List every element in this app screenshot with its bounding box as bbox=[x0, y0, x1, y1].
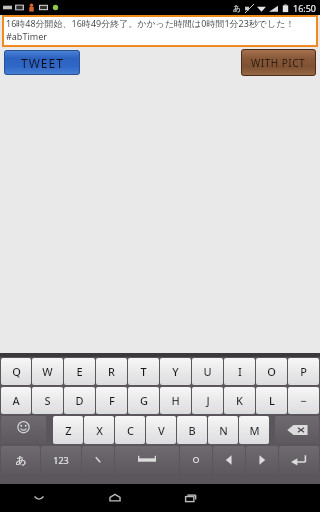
button[interactable]: E bbox=[64, 358, 95, 385]
button[interactable]: Symbols bbox=[1, 416, 46, 444]
button[interactable]: O bbox=[256, 358, 287, 385]
staticText: G bbox=[140, 393, 148, 408]
staticText: X bbox=[96, 423, 103, 438]
button[interactable]: R bbox=[96, 358, 127, 385]
staticText: 16時48分開始、16時49分終了。かかった時間は0時間1分23秒でした！ #a… bbox=[6, 17, 295, 43]
button[interactable]: F bbox=[96, 387, 127, 414]
staticText: K bbox=[236, 393, 243, 408]
staticText: P bbox=[300, 364, 307, 379]
staticText: − bbox=[300, 393, 307, 408]
staticText: R bbox=[108, 364, 115, 379]
staticText: O bbox=[267, 364, 276, 379]
button[interactable]: K bbox=[224, 387, 255, 414]
staticText: WITH PICT bbox=[251, 56, 306, 70]
staticText: B bbox=[188, 423, 196, 438]
button[interactable]: P bbox=[288, 358, 319, 385]
button[interactable]: Q bbox=[1, 358, 31, 385]
staticText: あ bbox=[233, 3, 242, 13]
staticText: TWEET bbox=[21, 55, 64, 71]
staticText: N bbox=[219, 423, 228, 438]
staticText: W bbox=[42, 364, 53, 379]
button[interactable]: Z bbox=[53, 416, 83, 444]
button[interactable]: S bbox=[32, 387, 63, 414]
button[interactable]: D bbox=[64, 387, 95, 414]
button[interactable]: Recent apps bbox=[153, 484, 229, 512]
button[interactable]: 16時48分開始、16時49分終了。かかった時間は0時間1分23秒でした！ #a… bbox=[2, 15, 318, 47]
button[interactable]: Backspace bbox=[275, 416, 319, 444]
staticText: Y bbox=[172, 364, 179, 379]
button[interactable]: Space bbox=[115, 446, 179, 474]
button[interactable]: Left bbox=[213, 446, 245, 474]
button[interactable]: Enter bbox=[279, 446, 319, 474]
button[interactable]: Punctuation bbox=[82, 446, 114, 474]
staticText: 123 bbox=[53, 454, 69, 466]
staticText: H bbox=[171, 393, 180, 408]
button[interactable]: V bbox=[146, 416, 176, 444]
staticText: A bbox=[12, 393, 20, 408]
button[interactable]: W bbox=[32, 358, 63, 385]
staticText: M bbox=[249, 423, 260, 438]
staticText: L bbox=[269, 393, 275, 408]
staticText: V bbox=[158, 423, 165, 438]
button[interactable]: あ bbox=[1, 446, 40, 474]
button[interactable]: M bbox=[239, 416, 269, 444]
button[interactable]: C bbox=[115, 416, 145, 444]
button[interactable]: X bbox=[84, 416, 114, 444]
staticText: E bbox=[76, 364, 83, 379]
button[interactable]: B bbox=[177, 416, 207, 444]
staticText: あ bbox=[15, 453, 27, 467]
button[interactable]: − bbox=[288, 387, 319, 414]
button[interactable]: H bbox=[160, 387, 191, 414]
button[interactable]: A bbox=[1, 387, 31, 414]
button[interactable]: TWEET bbox=[4, 50, 80, 75]
staticText: Q bbox=[12, 364, 21, 379]
staticText: T bbox=[140, 364, 147, 379]
button[interactable]: Y bbox=[160, 358, 191, 385]
staticText: J bbox=[206, 393, 210, 408]
staticText: S bbox=[44, 393, 51, 408]
staticText: Z bbox=[65, 423, 72, 438]
button[interactable]: L bbox=[256, 387, 287, 414]
button[interactable]: Back bbox=[0, 484, 77, 512]
staticText: D bbox=[75, 393, 84, 408]
button[interactable]: U bbox=[192, 358, 223, 385]
staticText: 16:50 bbox=[293, 2, 317, 14]
button[interactable]: Home bbox=[77, 484, 153, 512]
button[interactable]: Degree bbox=[180, 446, 212, 474]
button[interactable]: N bbox=[208, 416, 238, 444]
button[interactable]: Right bbox=[246, 446, 278, 474]
staticText: C bbox=[127, 423, 134, 438]
button[interactable]: G bbox=[128, 387, 159, 414]
staticText: F bbox=[109, 393, 115, 408]
button[interactable]: T bbox=[128, 358, 159, 385]
button[interactable]: 123 bbox=[41, 446, 81, 474]
staticText: I bbox=[238, 364, 242, 379]
button[interactable]: I bbox=[224, 358, 255, 385]
staticText: U bbox=[203, 364, 212, 379]
button[interactable]: J bbox=[192, 387, 223, 414]
button[interactable]: WITH PICT bbox=[241, 49, 316, 76]
